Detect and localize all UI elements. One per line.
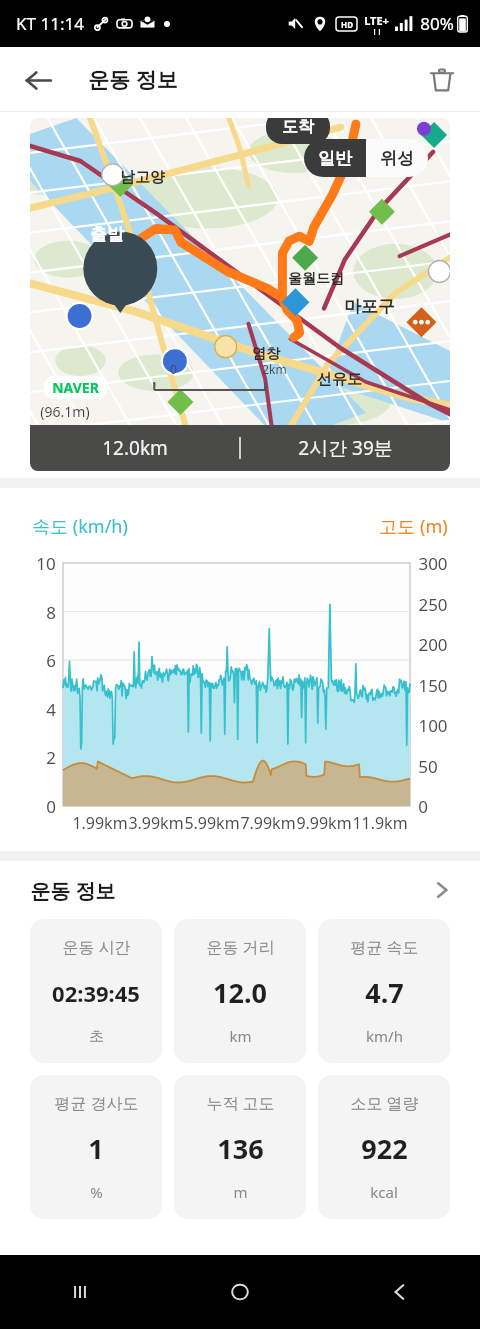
staticText: 0 [418, 795, 428, 818]
other: More details [430, 878, 454, 902]
staticText: 도착 [282, 118, 314, 137]
staticText: 922 [361, 1130, 408, 1167]
staticText: 일반 [318, 148, 352, 169]
staticText: 운동 정보 [30, 877, 116, 904]
staticText: 누적 고도 [206, 1092, 275, 1114]
staticText: 250 [418, 593, 448, 616]
button[interactable]: 운동 정보 [0, 861, 480, 919]
button[interactable]: 운동 거리 [174, 919, 306, 1063]
staticText: 150 [418, 674, 448, 697]
staticText: 9.99km [296, 812, 352, 834]
staticText: 7.99km [240, 812, 296, 834]
staticText: 50 [418, 755, 438, 778]
button[interactable]: 누적 고도 [174, 1075, 306, 1219]
button[interactable]: 소모 열량 [318, 1075, 450, 1219]
staticText: 5.99km [184, 812, 240, 834]
staticText: m [233, 1182, 248, 1202]
staticText: 200 [418, 633, 448, 656]
staticText: 고도 (m) [379, 514, 448, 539]
staticText: 1 [88, 1130, 104, 1167]
staticText: 운동 정보 [88, 65, 178, 94]
staticText: 평균 경사도 [54, 1092, 139, 1114]
button[interactable]: Back [12, 54, 64, 106]
staticText: 출발 [90, 224, 124, 245]
staticText: 6 [46, 649, 56, 672]
staticText: 2km [262, 361, 287, 377]
staticText: 12.0km [102, 435, 168, 461]
staticText: 속도 (km/h) [32, 514, 128, 539]
staticText: km [229, 1026, 252, 1046]
button[interactable]: 평균 경사도 [30, 1075, 162, 1219]
staticText: 소모 열량 [350, 1092, 419, 1114]
staticText: HD [341, 19, 353, 30]
staticText: 평균 속도 [350, 936, 419, 958]
button[interactable]: 위성 [366, 139, 428, 177]
staticText: 02:39:45 [52, 978, 140, 1008]
button[interactable]: Route map [30, 118, 450, 425]
staticText: % [90, 1182, 103, 1202]
button[interactable]: 운동 시간 [30, 919, 162, 1063]
staticText: 초 [89, 1027, 104, 1046]
button[interactable]: Speed and elevation chart [0, 488, 480, 851]
staticText: 4 [46, 698, 56, 721]
staticText: km/h [366, 1026, 403, 1046]
staticText: 1.99km [72, 812, 128, 834]
button[interactable]: Recents [0, 1255, 160, 1329]
staticText: 남고양 [120, 168, 165, 187]
staticText: 4.7 [365, 974, 404, 1011]
staticText: LTE+ [364, 13, 389, 28]
staticText: KT 11:14 [16, 12, 84, 35]
staticText: 2시간 39분 [298, 435, 393, 461]
staticText: 3.99km [128, 812, 184, 834]
staticText: 운동 시간 [62, 936, 131, 958]
staticText: 11.9km [352, 812, 408, 834]
staticText: 100 [418, 714, 448, 737]
staticText: 울월드컵 [288, 270, 344, 288]
button[interactable]: Back [320, 1255, 480, 1329]
staticText: NAVER [52, 378, 99, 397]
staticText: 300 [418, 552, 448, 575]
button[interactable]: 평균 속도 [318, 919, 450, 1063]
staticText: kcal [370, 1182, 398, 1202]
button[interactable]: Delete [416, 54, 468, 106]
staticText: 마포구 [344, 296, 395, 317]
button[interactable]: Home [160, 1255, 320, 1329]
staticText: 0 [170, 361, 177, 377]
staticText: (96.1m) [40, 402, 90, 421]
staticText: 선유도 [317, 370, 362, 389]
staticText: 12.0 [213, 974, 267, 1011]
staticText: 80% [420, 12, 454, 35]
button[interactable]: 일반 [304, 139, 366, 177]
staticText: 8 [46, 601, 56, 624]
staticText: 0 [46, 795, 56, 818]
staticText: 위성 [380, 148, 414, 169]
staticText: 2 [46, 746, 56, 769]
staticText: 10 [36, 552, 56, 575]
staticText: 136 [217, 1130, 264, 1167]
staticText: 운동 거리 [206, 936, 275, 958]
staticText: 염창 [252, 345, 280, 363]
